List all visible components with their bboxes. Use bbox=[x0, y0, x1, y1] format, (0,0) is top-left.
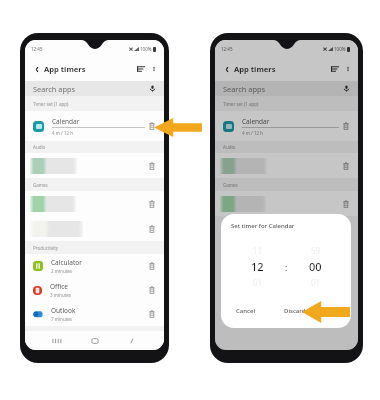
staticText: 7 minutes bbox=[51, 316, 72, 322]
staticText: Office bbox=[50, 282, 69, 291]
button[interactable]: Home bbox=[89, 336, 101, 346]
button[interactable]: More options bbox=[344, 65, 352, 73]
staticText: 11 bbox=[253, 245, 263, 256]
staticText: Timer set (1 app) bbox=[223, 101, 259, 107]
button[interactable]: Delete timer bbox=[149, 225, 155, 233]
staticText: Productivity bbox=[33, 245, 59, 251]
button[interactable]: Delete timer bbox=[25, 216, 164, 241]
button[interactable]: Calendar bbox=[215, 111, 358, 141]
staticText: : bbox=[285, 261, 288, 273]
button[interactable]: Search apps bbox=[215, 81, 358, 96]
button[interactable]: Delete timer bbox=[343, 200, 349, 208]
staticText: App timers bbox=[234, 64, 276, 74]
button[interactable]: Back bbox=[222, 65, 231, 74]
staticText: Calendar bbox=[52, 117, 80, 126]
staticText: 100% bbox=[334, 46, 346, 52]
button[interactable]: Delete timer bbox=[149, 286, 155, 294]
staticText: Cancel bbox=[236, 307, 256, 315]
button[interactable]: Sort bbox=[331, 65, 339, 73]
button[interactable]: Delete timer bbox=[149, 310, 155, 318]
staticText: 12:45 bbox=[31, 46, 43, 52]
staticText: 01 bbox=[311, 277, 321, 288]
button[interactable]: Recents bbox=[51, 336, 63, 346]
staticText: 100% bbox=[140, 46, 152, 52]
staticText: 00 bbox=[309, 259, 322, 274]
staticText: 2 minutes bbox=[51, 268, 72, 274]
button[interactable]: Discard bbox=[278, 303, 312, 319]
staticText: Games bbox=[33, 182, 48, 188]
staticText: Calculator bbox=[51, 258, 82, 267]
staticText: 3 minutes bbox=[50, 292, 71, 298]
staticText: 4 m / 12 h bbox=[52, 130, 74, 136]
staticText: Audio bbox=[33, 144, 46, 150]
button[interactable]: Delete timer bbox=[149, 262, 155, 270]
button[interactable]: Calculator bbox=[25, 254, 164, 278]
staticText: Audio bbox=[223, 144, 236, 150]
staticText: Outlook bbox=[51, 306, 76, 315]
staticText: Set timer for Calendar bbox=[231, 222, 295, 230]
button[interactable]: More options bbox=[150, 65, 158, 73]
button[interactable]: Back bbox=[126, 336, 138, 346]
button[interactable]: Delete timer bbox=[25, 153, 164, 178]
button[interactable]: Delete timer bbox=[25, 191, 164, 216]
button[interactable]: Calendar bbox=[25, 111, 164, 141]
button[interactable]: Delete timer bbox=[343, 122, 349, 130]
button[interactable]: Office bbox=[25, 278, 164, 302]
staticText: Search apps bbox=[33, 84, 76, 94]
staticText: 12:45 bbox=[221, 46, 233, 52]
staticText: 4 m / 12 h bbox=[242, 130, 264, 136]
button[interactable]: Delete timer bbox=[215, 191, 358, 216]
button[interactable]: Delete timer bbox=[343, 162, 349, 170]
button[interactable]: Outlook bbox=[25, 302, 164, 326]
staticText: 59 bbox=[311, 245, 321, 256]
button[interactable]: Cancel bbox=[230, 303, 262, 319]
staticText: Calendar bbox=[242, 117, 270, 126]
button[interactable]: Delete timer bbox=[149, 162, 155, 170]
staticText: App timers bbox=[44, 64, 86, 74]
button[interactable]: Search apps bbox=[25, 81, 164, 96]
button[interactable]: Sort bbox=[137, 65, 145, 73]
button[interactable]: Delete timer bbox=[215, 153, 358, 178]
staticText: 01 bbox=[253, 277, 263, 288]
staticText: Games bbox=[223, 182, 238, 188]
staticText: Discard bbox=[284, 307, 306, 315]
button[interactable]: Back bbox=[32, 65, 41, 74]
button[interactable]: Delete timer bbox=[149, 200, 155, 208]
button[interactable]: Delete timer bbox=[149, 122, 155, 130]
staticText: 12 bbox=[251, 259, 264, 274]
staticText: Search apps bbox=[223, 84, 266, 94]
staticText: Timer set (1 app) bbox=[33, 101, 69, 107]
